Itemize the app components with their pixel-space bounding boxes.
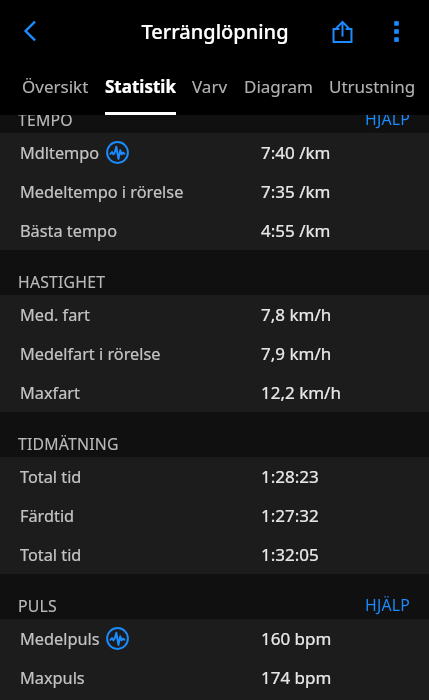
- button[interactable]: Mdltempo: [0, 133, 429, 172]
- staticText: 1:27:32: [261, 504, 319, 527]
- staticText: 4:55 /km: [261, 219, 331, 242]
- staticText: Medeltempo i rörelse: [20, 181, 184, 203]
- staticText: HJÄLP: [365, 115, 410, 130]
- staticText: 1:28:23: [261, 465, 319, 488]
- staticText: Medelfart i rörelse: [20, 343, 161, 365]
- staticText: TEMPO: [18, 115, 73, 131]
- button[interactable]: Medelfart i rörelse: [0, 334, 429, 373]
- staticText: 160 bpm: [261, 627, 332, 650]
- staticText: Total tid: [20, 466, 82, 488]
- button[interactable]: HJÄLP: [363, 593, 412, 617]
- staticText: Total tid: [20, 544, 82, 566]
- staticText: Medelpuls: [20, 628, 100, 650]
- staticText: HJÄLP: [365, 594, 410, 616]
- staticText: TIDMÄTNING: [18, 433, 119, 455]
- staticText: 12,2 km/h: [261, 381, 341, 404]
- button[interactable]: Maxfart: [0, 373, 429, 412]
- button[interactable]: Medeltempo i rörelse: [0, 172, 429, 211]
- button[interactable]: Total tid: [0, 457, 429, 496]
- button[interactable]: Statistik: [97, 58, 184, 116]
- button[interactable]: Medelpuls: [0, 619, 429, 658]
- staticText: Översikt: [22, 75, 89, 98]
- staticText: Terränglöpning: [141, 18, 289, 45]
- staticText: Varv: [192, 75, 228, 98]
- button[interactable]: Med. fart: [0, 295, 429, 334]
- staticText: 1:32:05: [261, 543, 319, 566]
- staticText: HASTIGHET: [18, 271, 106, 293]
- button[interactable]: Utrustning: [321, 58, 424, 116]
- button[interactable]: Share: [320, 9, 364, 53]
- staticText: 7:35 /km: [261, 180, 331, 203]
- staticText: Färdtid: [20, 505, 75, 527]
- staticText: 174 bpm: [261, 666, 332, 689]
- button[interactable]: Diagram: [236, 58, 321, 116]
- staticText: PULS: [18, 595, 57, 617]
- button[interactable]: More options: [374, 9, 418, 53]
- staticText: 7:40 /km: [261, 141, 331, 164]
- staticText: Maxpuls: [20, 667, 85, 689]
- staticText: Mdltempo: [20, 142, 100, 164]
- staticText: Bästa tempo: [20, 220, 117, 242]
- button[interactable]: Översikt: [14, 58, 97, 116]
- button[interactable]: Bästa tempo: [0, 211, 429, 250]
- button[interactable]: Maxpuls: [0, 658, 429, 697]
- button[interactable]: Varv: [184, 58, 236, 116]
- button[interactable]: Back: [8, 9, 52, 53]
- staticText: 7,9 km/h: [261, 342, 332, 365]
- staticText: Utrustning: [329, 75, 416, 98]
- button[interactable]: Färdtid: [0, 496, 429, 535]
- staticText: Maxfart: [20, 382, 80, 404]
- staticText: Statistik: [105, 75, 176, 98]
- staticText: 7,8 km/h: [261, 303, 332, 326]
- staticText: Diagram: [244, 75, 313, 98]
- button[interactable]: Total tid: [0, 535, 429, 574]
- button[interactable]: HJÄLP: [363, 115, 412, 131]
- staticText: Med. fart: [20, 304, 90, 326]
